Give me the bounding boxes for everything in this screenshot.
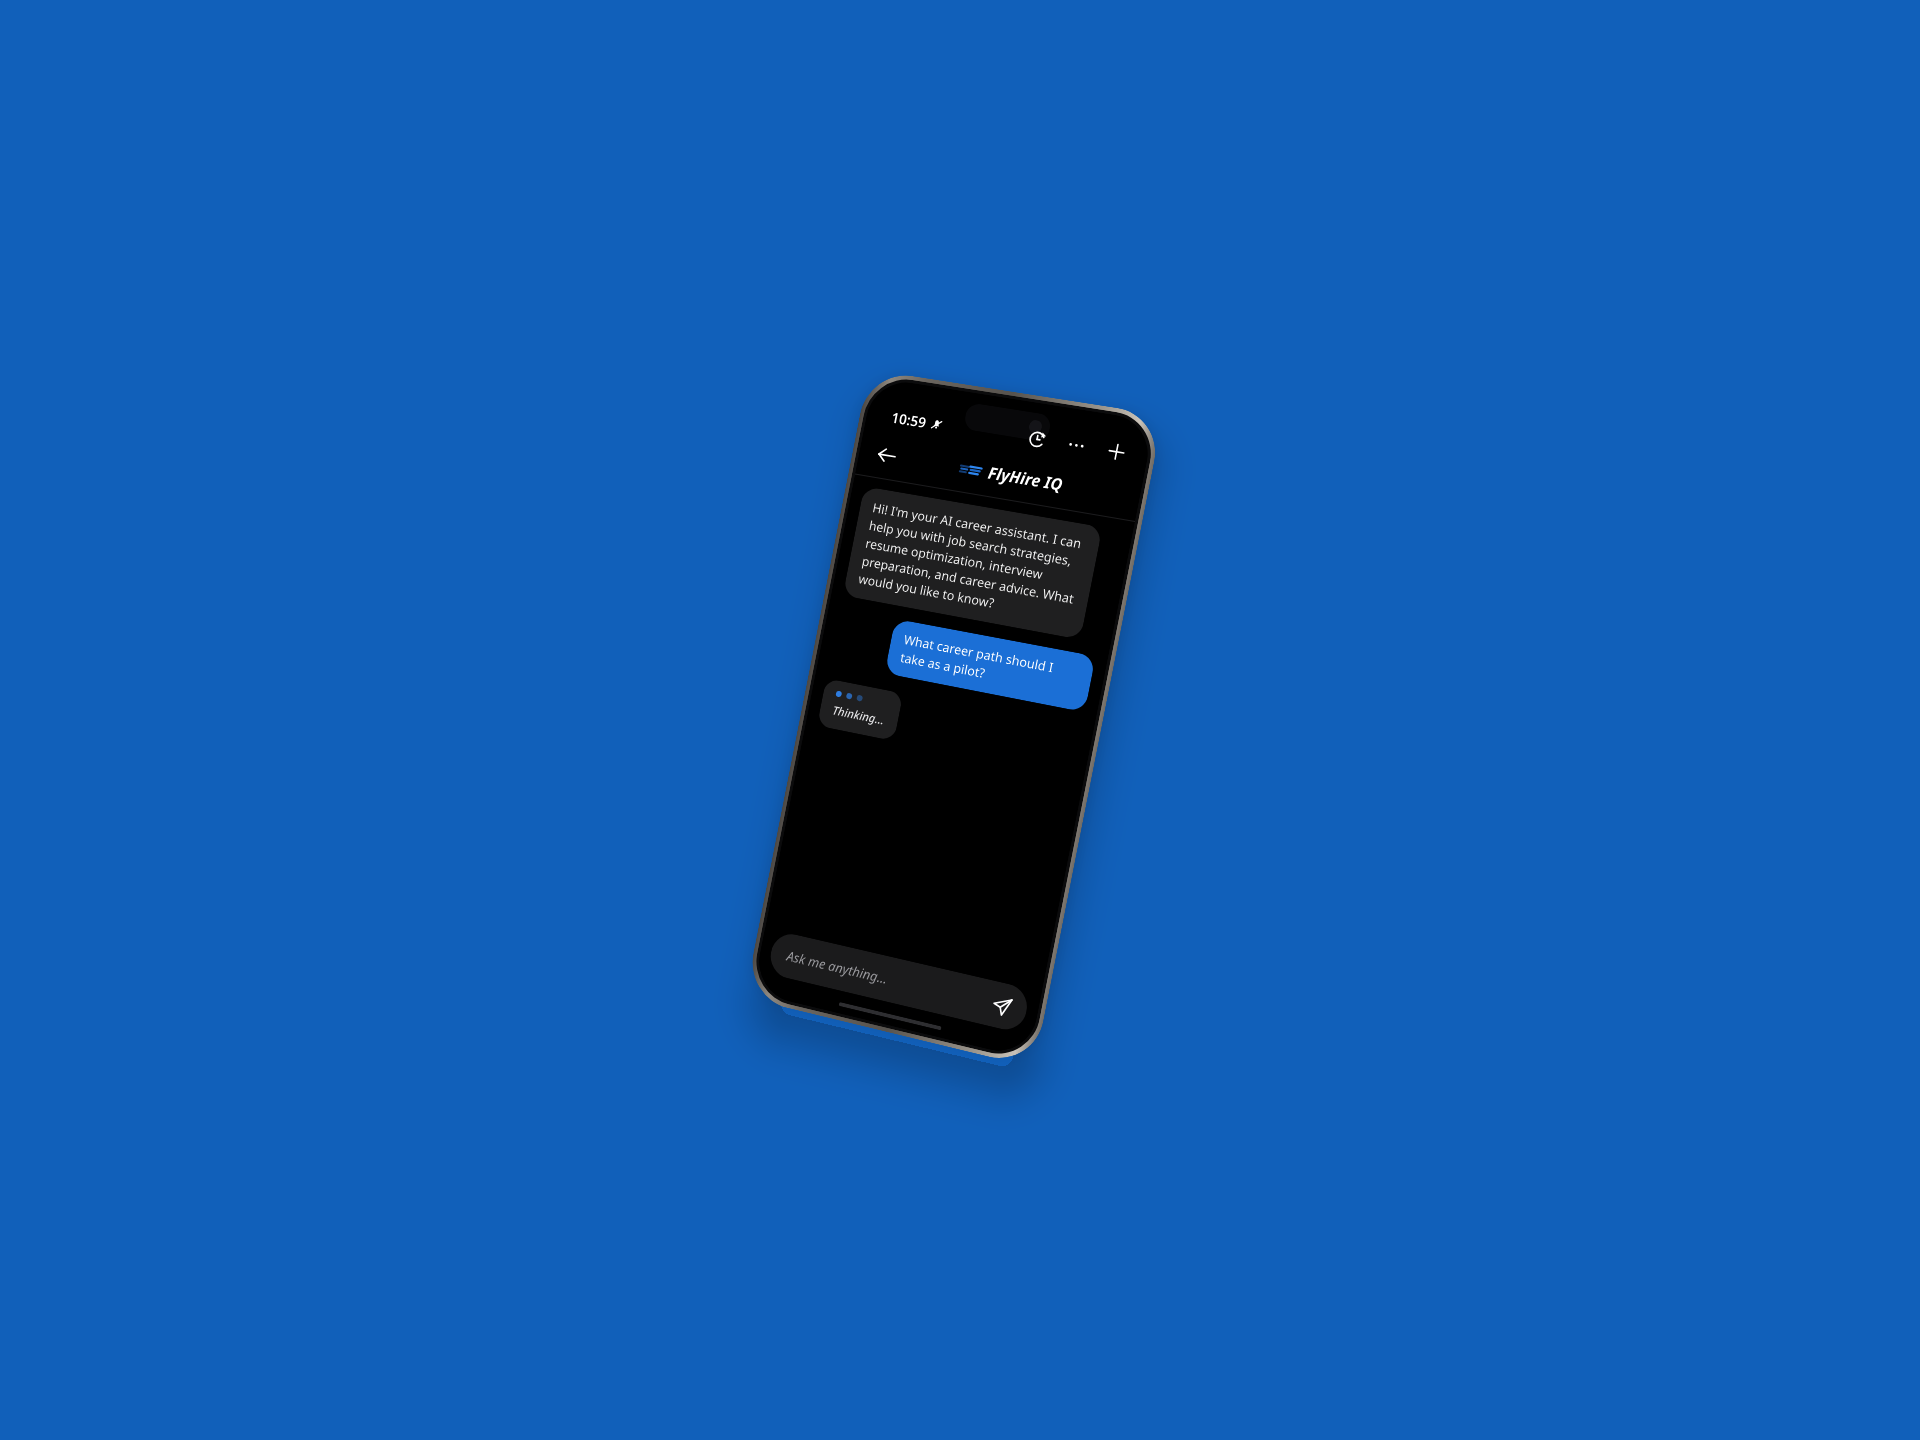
button[interactable]: Send xyxy=(981,984,1022,1027)
staticText: Hi! I'm your AI career assistant. I can … xyxy=(857,499,1087,626)
button[interactable]: What career path should I take as a pilo… xyxy=(884,619,1096,712)
button[interactable]: History xyxy=(1021,424,1052,454)
staticText: Thinking... xyxy=(831,702,887,729)
button[interactable]: New chat xyxy=(1101,436,1132,467)
staticText: 10:59 xyxy=(890,408,928,432)
button[interactable]: Hi! I'm your AI career assistant. I can … xyxy=(843,486,1103,640)
button[interactable]: Ask me anything... xyxy=(767,930,1031,1034)
button[interactable]: Back xyxy=(865,434,909,477)
button[interactable]: Thinking... xyxy=(817,678,903,741)
staticText: FlyHire IQ xyxy=(986,461,1065,496)
button[interactable]: More options xyxy=(1061,430,1092,461)
staticText: What career path should I take as a pilo… xyxy=(899,631,1081,700)
staticText: Ask me anything... xyxy=(785,946,986,1011)
